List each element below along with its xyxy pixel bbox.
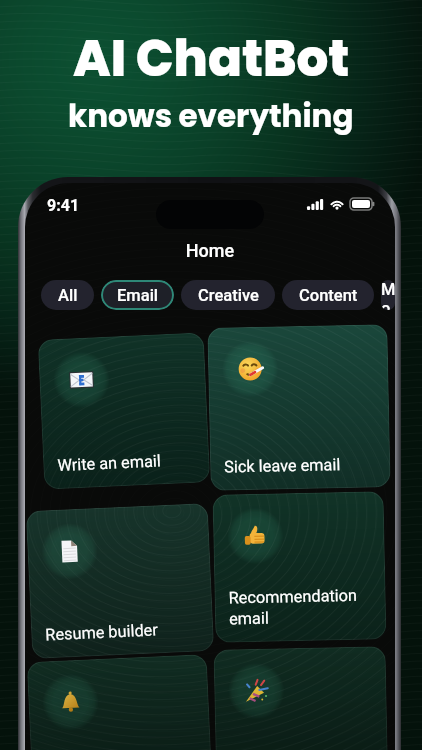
- button[interactable]: Recommendation email: [212, 491, 387, 643]
- staticText: Sick leave email: [224, 455, 341, 476]
- button[interactable]: [213, 646, 388, 750]
- button[interactable]: More: [381, 280, 395, 310]
- staticText: AI ChatBot: [73, 24, 350, 94]
- staticText: All: [58, 286, 78, 305]
- button[interactable]: [27, 654, 213, 750]
- button[interactable]: Resume builder: [26, 503, 214, 659]
- staticText: Email: [117, 286, 159, 305]
- button[interactable]: Creative: [181, 280, 275, 310]
- staticText: More: [381, 280, 395, 310]
- button[interactable]: Content: [282, 280, 374, 310]
- staticText: Recommendation email: [228, 586, 358, 628]
- staticText: knows everything: [68, 94, 354, 137]
- staticText: Home: [25, 240, 395, 261]
- staticText: Write an email: [57, 451, 162, 475]
- button[interactable]: All: [41, 280, 94, 310]
- button[interactable]: Sick leave email: [207, 324, 391, 491]
- button[interactable]: Email: [101, 280, 174, 310]
- staticText: Content: [299, 286, 358, 305]
- staticText: 9:41: [47, 196, 80, 215]
- staticText: Resume builder: [45, 620, 159, 644]
- button[interactable]: Write an email: [38, 332, 210, 490]
- staticText: Creative: [198, 286, 259, 305]
